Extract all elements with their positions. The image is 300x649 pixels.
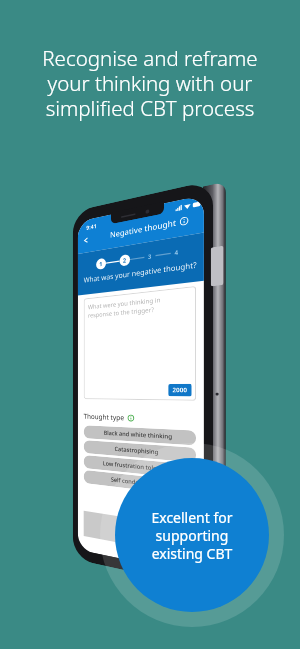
staticText: Negative thought [110,216,177,240]
staticText: Self condemnation [111,476,163,489]
staticText: 3 [148,252,152,261]
button[interactable]: Black and white thinking [84,425,196,445]
staticText: Excellent for supporting existing CBT [151,508,233,563]
staticText: What were you thinking in response to th… [88,292,191,320]
button[interactable]: Excellent for supporting existing CBT [115,458,269,612]
staticText: 2000 [172,386,187,394]
staticText: What was your negative thought? [84,259,197,285]
button[interactable]: Information [179,215,188,226]
staticText: 1 [99,260,103,268]
staticText: Recognise and reframe your thinking with… [42,44,258,122]
button[interactable]: Self condemnation [84,470,196,497]
button[interactable]: What were you thinking in response to th… [84,286,196,401]
staticText: Black and white thinking [104,429,172,441]
staticText: Low frustration tolerance [103,459,173,474]
staticText: 9:41 [86,222,97,232]
staticText: Thought type [84,411,125,422]
staticText: 2 [123,256,127,265]
button[interactable]: Low frustration tolerance [84,455,196,480]
staticText: 4 [174,248,179,257]
staticText: Catastrophising [115,445,159,456]
button[interactable]: Back [80,233,92,248]
button[interactable]: Catastrophising [84,440,196,463]
